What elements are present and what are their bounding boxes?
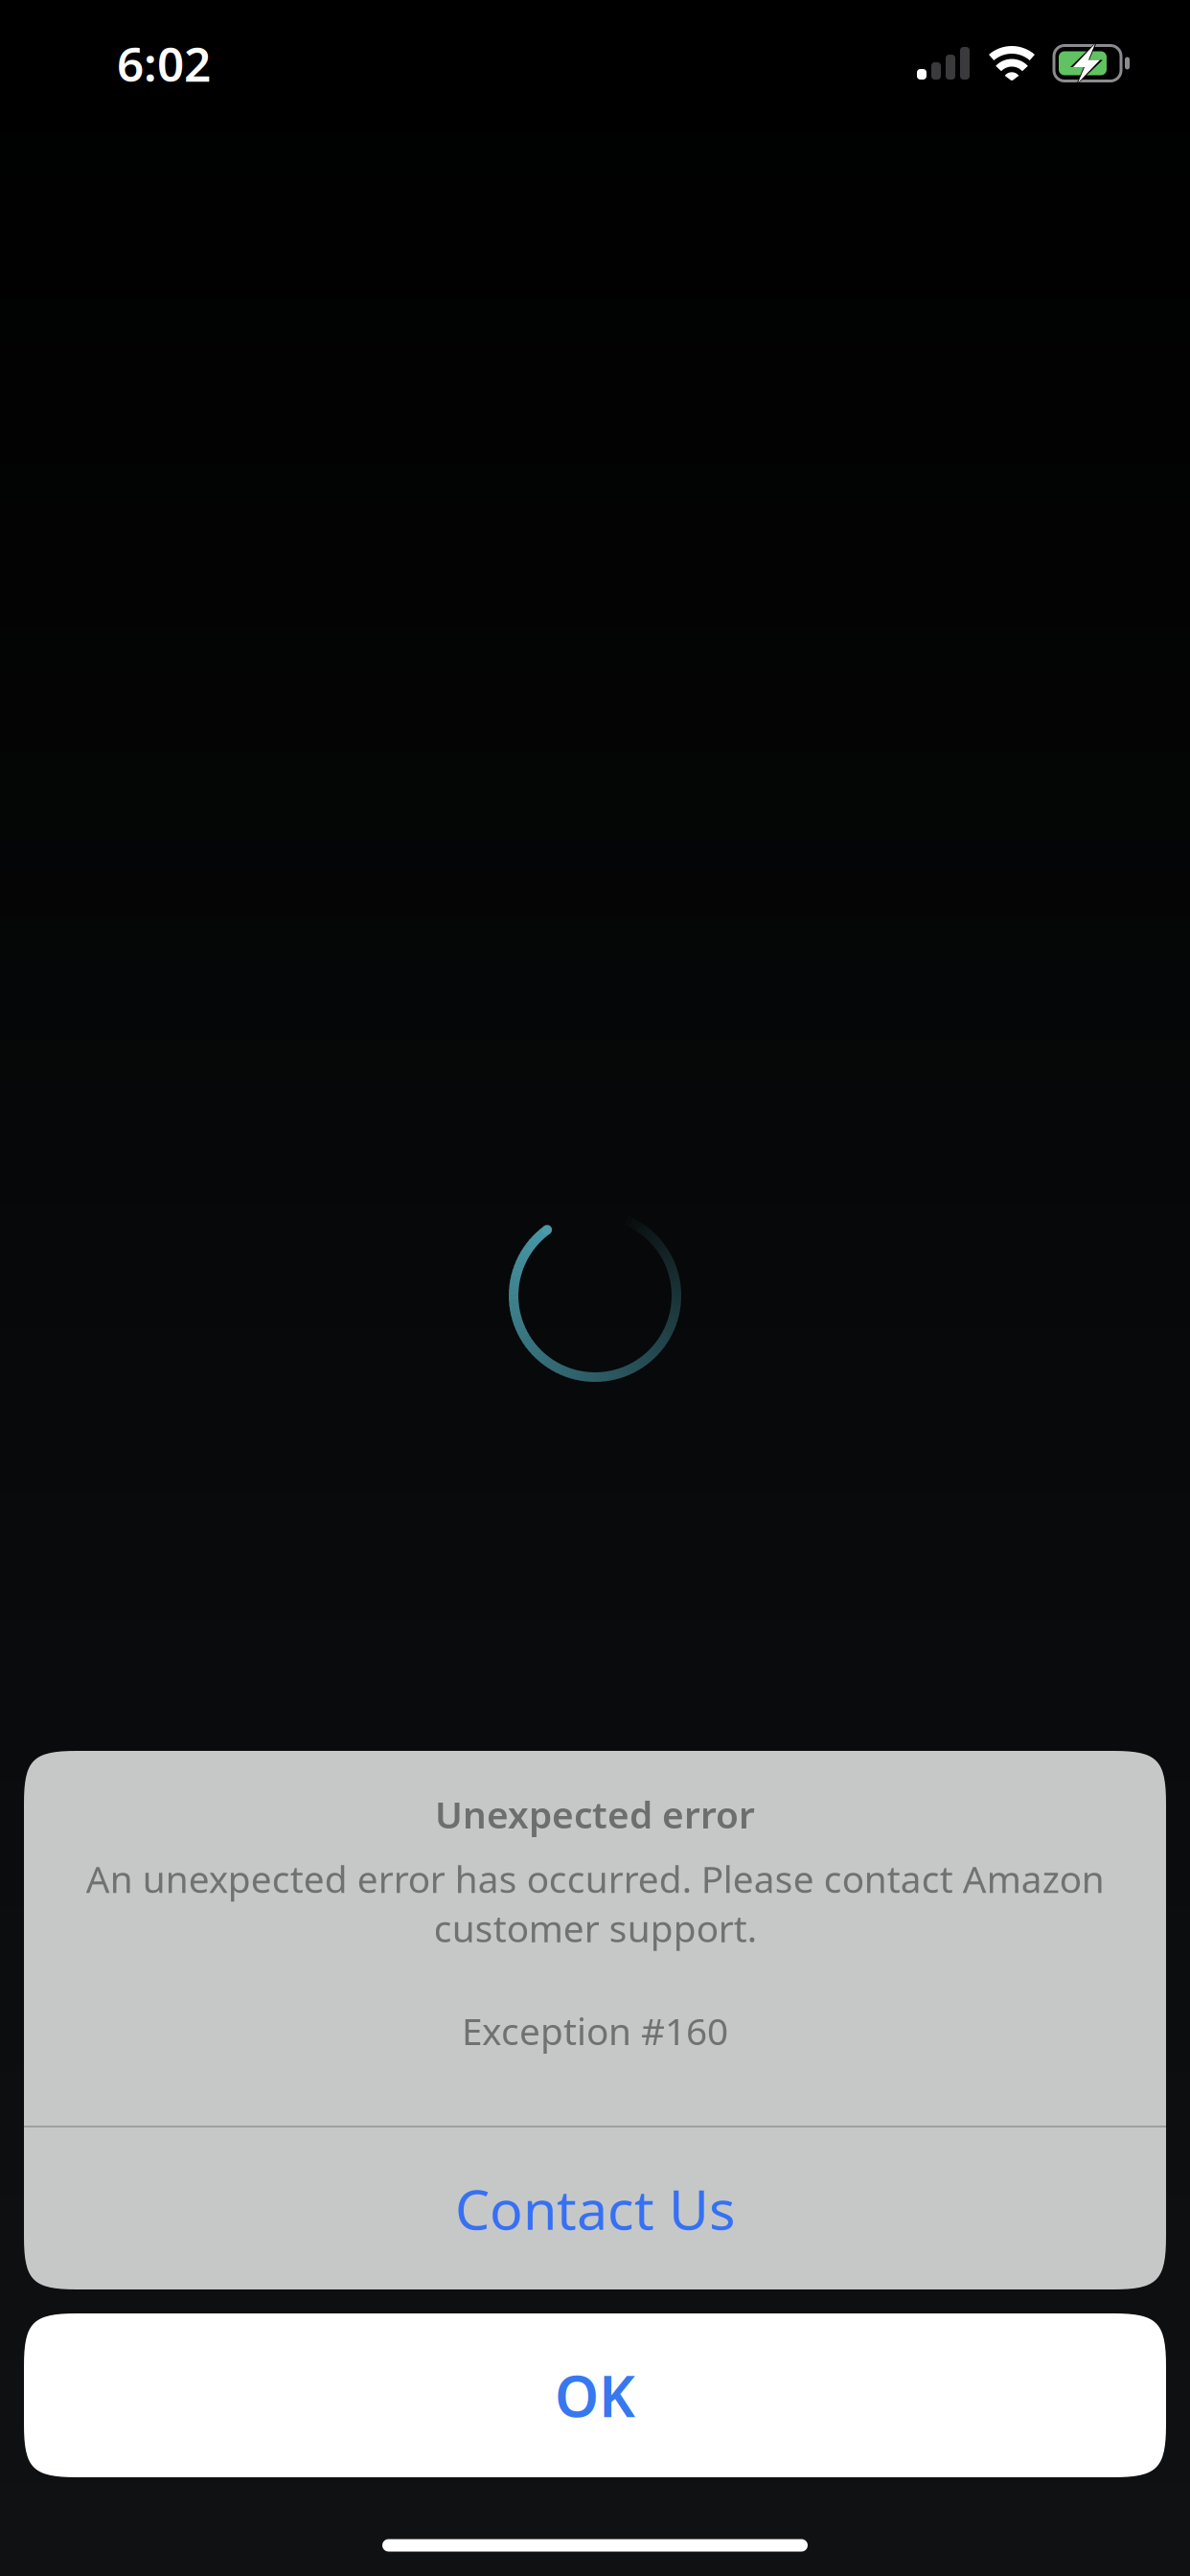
button[interactable]: OK <box>24 2313 1166 2477</box>
staticText: 6:02 <box>117 32 211 95</box>
button[interactable]: Contact Us <box>24 2127 1166 2289</box>
staticText: Unexpected error <box>435 1789 755 1839</box>
staticText: Exception #160 <box>462 2006 728 2055</box>
staticText: Contact Us <box>455 2172 735 2245</box>
staticText: OK <box>555 2358 635 2433</box>
staticText: An unexpected error has occurred. Please… <box>86 1854 1104 1953</box>
